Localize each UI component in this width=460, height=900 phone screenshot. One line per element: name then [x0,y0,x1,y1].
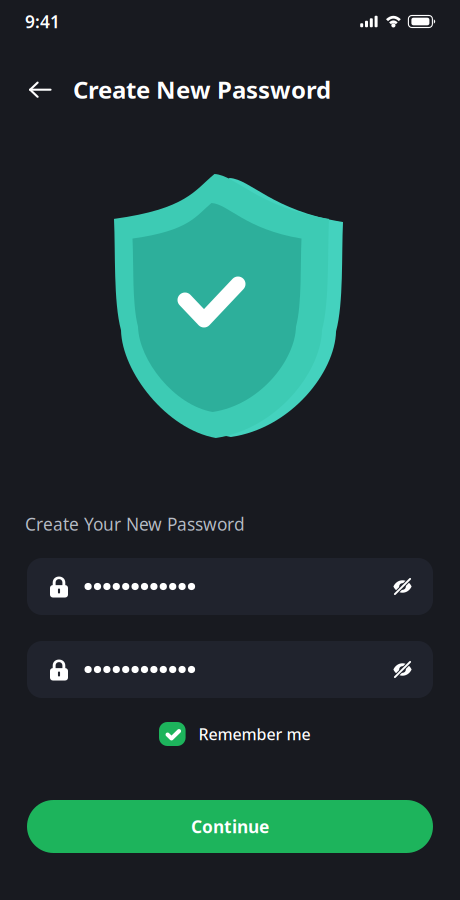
button[interactable]: Continue [27,800,433,853]
button[interactable]: Show password [393,660,412,679]
staticText: Create New Password [73,73,331,105]
button[interactable]: Remember me [159,722,311,746]
button[interactable]: Show password [393,577,412,596]
staticText: Create Your New Password [25,512,245,535]
button[interactable]: Back [23,73,57,107]
staticText: 9:41 [25,10,60,33]
staticText: Remember me [199,723,311,745]
staticText: Continue [191,815,269,838]
